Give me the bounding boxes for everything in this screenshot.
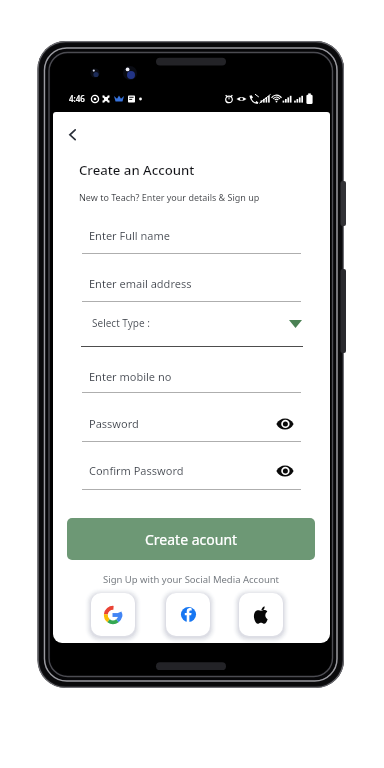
staticText: New to Teach? Enter your details & Sign … bbox=[79, 191, 260, 203]
button[interactable]: Back bbox=[59, 119, 89, 149]
staticText: Confirm Password bbox=[89, 463, 184, 478]
staticText: Sign Up with your Social Media Account bbox=[103, 573, 280, 586]
button[interactable]: Sign up with Facebook bbox=[166, 593, 210, 636]
staticText: Password bbox=[89, 416, 139, 431]
button[interactable]: Toggle password visibility bbox=[272, 458, 298, 484]
staticText: Enter Full name bbox=[89, 228, 170, 243]
staticText: Create acount bbox=[145, 530, 238, 549]
staticText: Enter mobile no bbox=[89, 369, 172, 384]
button[interactable]: Create acount bbox=[67, 518, 315, 560]
staticText: Create an Account bbox=[79, 161, 195, 179]
button[interactable]: Sign up with Google bbox=[91, 593, 135, 636]
staticText: Enter email address bbox=[89, 276, 192, 291]
staticText: Select Type : bbox=[92, 316, 150, 330]
button[interactable]: Toggle password visibility bbox=[272, 411, 298, 437]
button[interactable]: Select type dropdown bbox=[289, 320, 302, 328]
button[interactable]: Sign up with Apple bbox=[239, 593, 283, 636]
staticText: 4:46 bbox=[69, 93, 85, 104]
